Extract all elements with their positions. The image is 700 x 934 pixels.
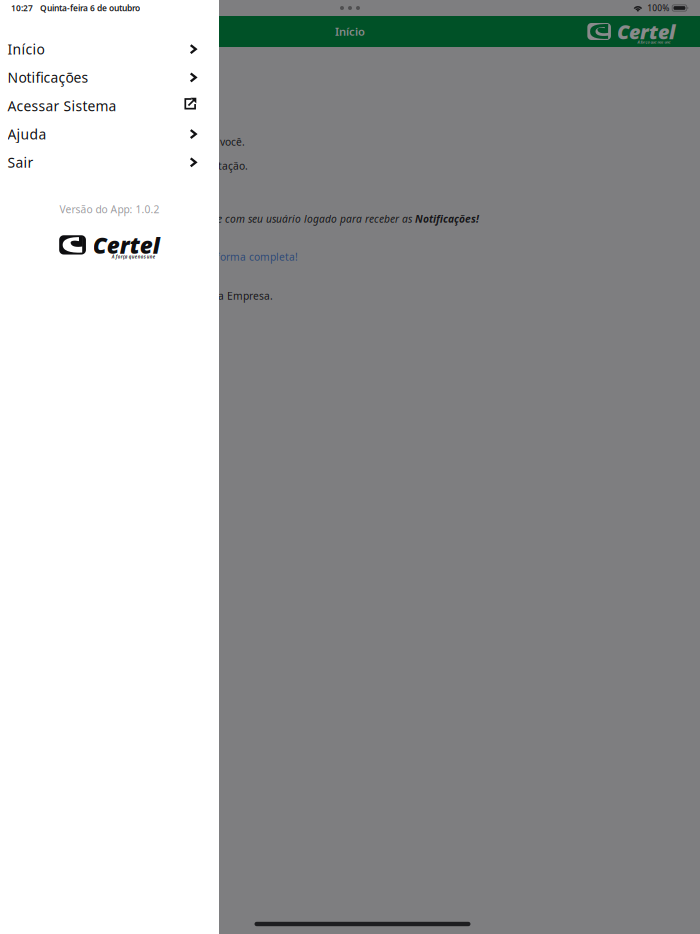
- staticText: 100%: [647, 2, 669, 14]
- button[interactable]: Acessar Sistema: [0, 92, 219, 120]
- staticText: Aqui você pode acompanhar suas faturas e…: [0, 159, 248, 173]
- staticText: 10:27: [11, 2, 33, 14]
- staticText: Início: [335, 24, 365, 39]
- staticText: Acesse nosso site e conheça nossa plataf…: [19, 250, 298, 264]
- staticText: Importante: mantenha este aplicativo ins…: [0, 212, 479, 226]
- staticText: Quinta-feira 6 de outubro: [40, 2, 140, 14]
- staticText: Ajuda: [7, 125, 46, 143]
- staticText: A força que nos une: [637, 39, 670, 44]
- staticText: Certel: [93, 230, 160, 260]
- staticText: Versão do App: 1.0.2: [59, 202, 159, 216]
- staticText: Acessar Sistema: [7, 96, 116, 115]
- staticText: Utilize o menu lateral para acessar o Si…: [0, 289, 273, 303]
- button[interactable]: Notificações: [0, 63, 219, 92]
- staticText: Notificações: [7, 68, 88, 87]
- staticText: Sair: [7, 153, 33, 171]
- staticText: A força que nos une: [112, 254, 155, 260]
- button[interactable]: Início: [0, 35, 219, 63]
- button[interactable]: Ajuda: [0, 120, 219, 148]
- button[interactable]: Sair: [0, 148, 219, 176]
- staticText: Seja bem-vindo(a), este é o app da Certe…: [0, 135, 245, 149]
- staticText: Certel: [617, 18, 675, 45]
- staticText: Início: [7, 40, 44, 58]
